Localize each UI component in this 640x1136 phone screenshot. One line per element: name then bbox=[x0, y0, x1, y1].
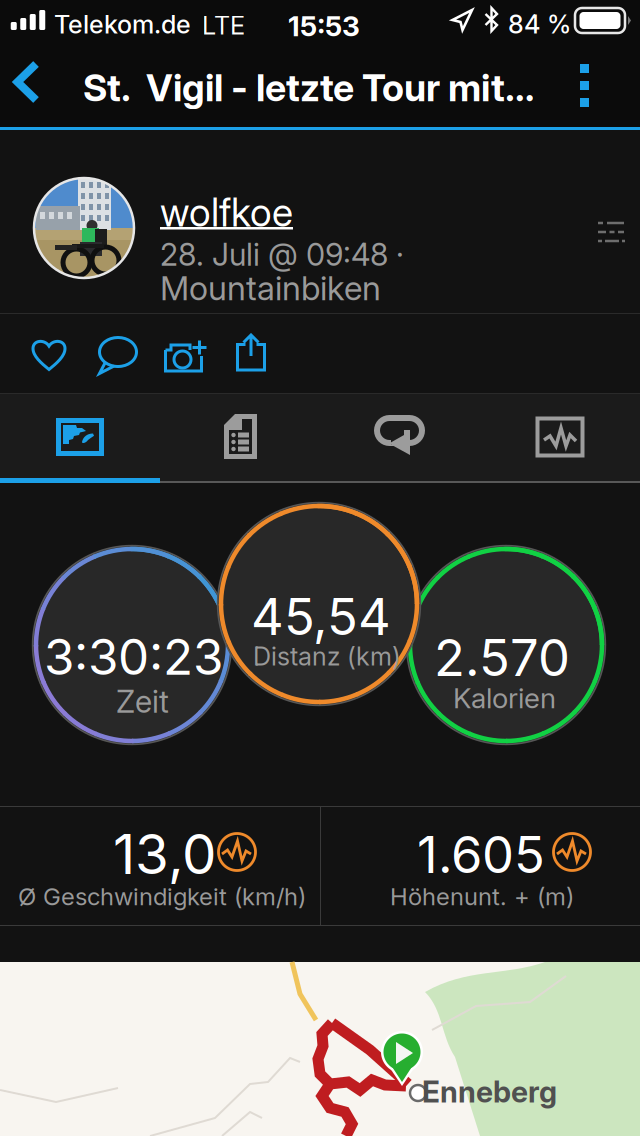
staticText: 45,54 bbox=[251, 586, 391, 647]
staticText: Zeit bbox=[116, 683, 169, 720]
button[interactable]: Graphs bbox=[480, 394, 640, 481]
staticText: Höhenunt. + (m) bbox=[390, 882, 574, 911]
staticText: Distanz (km) bbox=[253, 641, 401, 672]
button[interactable]: More options bbox=[558, 40, 620, 127]
staticText: Telekom.de bbox=[54, 9, 191, 40]
staticText: Ø Geschwindigkeit (km/h) bbox=[18, 882, 306, 911]
staticText: wolfkoe bbox=[160, 189, 293, 236]
staticText: 3:30:23 bbox=[44, 627, 223, 687]
button[interactable]: Details bbox=[160, 394, 320, 481]
button[interactable]: Photos bbox=[0, 394, 160, 481]
staticText: LTE bbox=[202, 10, 245, 41]
button[interactable]: Share bbox=[221, 318, 289, 380]
button[interactable]: Comment bbox=[85, 318, 153, 380]
button[interactable]: wolfkoe bbox=[160, 189, 305, 237]
staticText: 2.570 bbox=[434, 627, 570, 688]
staticText: St. Vigil - letzte Tour mit… bbox=[83, 65, 535, 110]
staticText: 15:53 bbox=[288, 9, 360, 43]
staticText: Enneberg bbox=[422, 1074, 557, 1109]
staticText: 28. Juli @ 09:48 · bbox=[160, 236, 404, 273]
staticText: 13,0 bbox=[113, 821, 216, 887]
staticText: 1.605 bbox=[417, 824, 545, 885]
button[interactable]: Like bbox=[18, 318, 86, 380]
staticText: 84 % bbox=[508, 9, 571, 40]
staticText: Mountainbiken bbox=[160, 268, 381, 308]
button[interactable]: Add photo bbox=[154, 318, 222, 380]
staticText: Kalorien bbox=[453, 681, 556, 715]
button[interactable]: Back bbox=[0, 40, 72, 127]
button[interactable]: Laps bbox=[320, 394, 480, 481]
